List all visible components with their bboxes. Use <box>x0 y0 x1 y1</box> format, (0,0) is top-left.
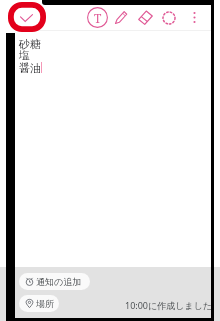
staticText: 場所 <box>36 298 54 309</box>
button[interactable]: Eraser <box>137 9 154 26</box>
button[interactable]: Text formatting <box>87 7 108 28</box>
button[interactable]: Selection <box>161 10 177 26</box>
staticText: 塩 <box>19 48 30 62</box>
staticText: 10:00に作成しました <box>125 299 213 311</box>
staticText: 砂糖 <box>19 37 41 51</box>
button[interactable]: More options <box>186 6 203 29</box>
staticText: 醤油 <box>19 61 41 75</box>
button[interactable]: 場所 <box>19 295 59 312</box>
button[interactable]: Pen <box>113 9 129 25</box>
button[interactable]: Done <box>14 5 39 30</box>
staticText: 通知の追加 <box>36 276 82 287</box>
staticText: T <box>94 10 102 26</box>
button[interactable]: 通知の追加 <box>19 273 90 290</box>
